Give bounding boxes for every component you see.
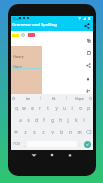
button[interactable]: i [68, 102, 76, 114]
button[interactable]: Hi [41, 94, 66, 102]
button[interactable]: f [40, 114, 48, 126]
staticText: t [47, 105, 49, 111]
button[interactable]: d [32, 114, 40, 126]
staticText: . [79, 142, 81, 147]
button[interactable]: Comma [22, 138, 27, 150]
button[interactable]: z [20, 126, 30, 138]
button[interactable]: Period [77, 138, 82, 150]
button[interactable]: v [48, 126, 57, 138]
button[interactable]: m [75, 126, 84, 138]
button[interactable]: s [24, 114, 32, 126]
button[interactable]: r [36, 102, 44, 114]
button[interactable]: Recents [66, 151, 74, 159]
button[interactable]: Share [84, 23, 90, 29]
button[interactable]: k [72, 114, 80, 126]
staticText: w [22, 105, 26, 111]
button[interactable]: Shift [11, 126, 20, 138]
staticText: 12:45 [12, 16, 21, 21]
button[interactable]: l [80, 114, 88, 126]
staticText: r [39, 105, 41, 111]
button[interactable]: y [52, 102, 60, 114]
button[interactable]: a [16, 114, 24, 126]
button[interactable]: n [66, 126, 75, 138]
staticText: k [75, 117, 78, 123]
button[interactable]: o [76, 102, 84, 114]
staticText: e [31, 105, 34, 111]
button[interactable]: Notifications [85, 76, 90, 81]
button[interactable]: Keyboard options [11, 96, 16, 101]
button[interactable]: Copy [86, 38, 91, 43]
button[interactable]: h [56, 114, 64, 126]
staticText: he [26, 96, 31, 101]
button[interactable]: w [20, 102, 28, 114]
staticText: d [35, 117, 38, 123]
button[interactable]: Share [86, 63, 91, 68]
button[interactable]: g [48, 114, 56, 126]
button[interactable]: Enter [84, 141, 91, 148]
staticText: o [79, 105, 82, 111]
staticText: Hope [75, 96, 84, 101]
button[interactable]: u [60, 102, 68, 114]
button[interactable]: b [57, 126, 66, 138]
button[interactable]: Home [48, 151, 56, 159]
button[interactable]: p [84, 102, 92, 114]
staticText: v [51, 129, 54, 135]
staticText: h [59, 117, 62, 123]
button[interactable]: Back [30, 151, 38, 159]
staticText: Grammar and Spelling [12, 22, 57, 28]
staticText: l [83, 117, 85, 123]
staticText: u [63, 105, 66, 111]
staticText: i [71, 105, 73, 111]
staticText: z [24, 129, 27, 135]
button[interactable]: t [44, 102, 52, 114]
staticText: a [19, 117, 22, 123]
button[interactable]: ?123 [11, 138, 22, 150]
staticText: Hory [13, 64, 22, 69]
button[interactable]: Hope [67, 94, 92, 102]
button[interactable]: e [28, 102, 36, 114]
staticText: Hi [52, 96, 56, 101]
staticText: Hoary [13, 54, 24, 59]
staticText: ?123 [13, 142, 20, 146]
staticText: , [24, 142, 26, 147]
staticText: j [67, 117, 69, 123]
staticText: q [15, 105, 18, 111]
staticText: b [60, 129, 63, 135]
button[interactable]: More [88, 96, 92, 100]
button[interactable]: Hoary [11, 46, 42, 94]
staticText: c [42, 129, 45, 135]
staticText: s [27, 117, 30, 123]
button[interactable]: Backspace [84, 126, 93, 138]
staticText: m [77, 129, 82, 135]
button[interactable]: Paste [86, 50, 91, 55]
button[interactable]: x [30, 126, 39, 138]
staticText: x [33, 129, 36, 135]
button[interactable]: j [64, 114, 72, 126]
staticText: p [87, 105, 90, 111]
button[interactable]: Add contact [85, 88, 90, 93]
button[interactable]: c [39, 126, 48, 138]
staticText: g [51, 117, 54, 123]
button[interactable]: he [16, 94, 40, 102]
staticText: n [69, 129, 72, 135]
staticText: f [43, 117, 45, 123]
staticText: y [55, 105, 58, 111]
button[interactable]: q [12, 102, 20, 114]
